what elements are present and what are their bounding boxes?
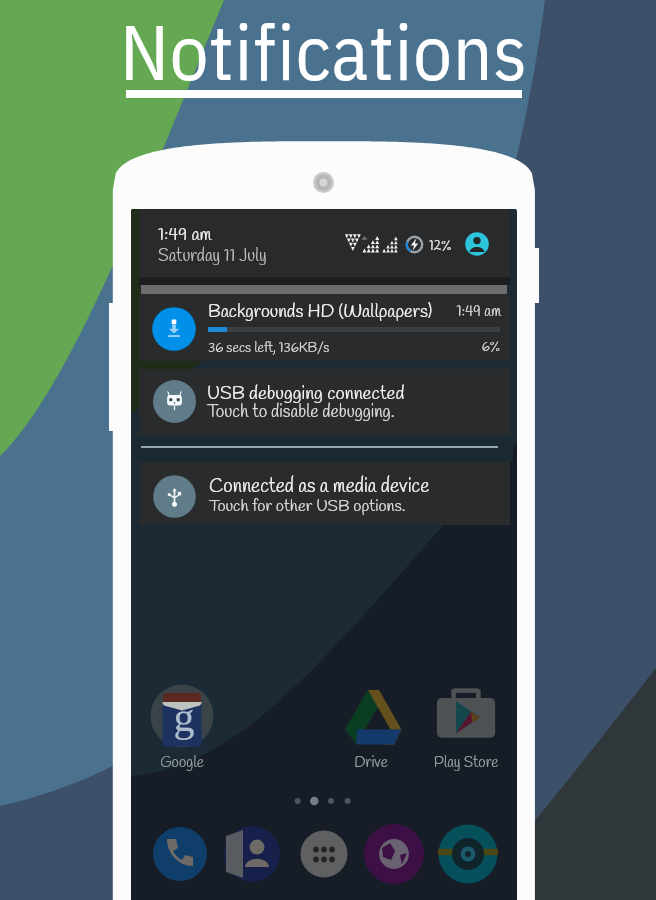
staticText: Google	[102, 753, 262, 777]
staticText: 12%	[429, 237, 452, 255]
button[interactable]	[139, 369, 510, 435]
button[interactable]: Drive	[337, 681, 405, 773]
staticText: Touch to disable debugging.	[207, 401, 395, 424]
staticText: Touch for other USB options.	[209, 495, 406, 517]
staticText: Connected as a media device	[209, 474, 430, 500]
staticText: Saturday 11 July	[158, 245, 267, 268]
button[interactable]	[139, 462, 510, 525]
staticText: Backgrounds HD (Wallpapers)	[208, 300, 432, 324]
button[interactable]: Phone	[150, 824, 210, 884]
staticText: Drive	[291, 753, 451, 777]
staticText: USB debugging connected	[207, 381, 405, 406]
button[interactable]: Contacts	[222, 824, 282, 884]
staticText: 36 secs left, 136KB/s	[208, 339, 330, 357]
button[interactable]: Camera	[438, 824, 498, 884]
staticText: 6%	[300, 338, 500, 360]
button[interactable]: Google	[148, 682, 216, 774]
staticText: g	[154, 694, 214, 761]
staticText: 1:49 am	[301, 302, 501, 326]
staticText: Notifications	[120, 1, 528, 101]
button[interactable]	[139, 294, 510, 361]
button[interactable]: Play Store	[432, 682, 500, 774]
staticText: 1:49 am	[158, 223, 212, 247]
button[interactable]: Browser	[364, 824, 424, 884]
button[interactable]: Apps	[294, 824, 354, 884]
staticText: Play Store	[386, 753, 546, 777]
